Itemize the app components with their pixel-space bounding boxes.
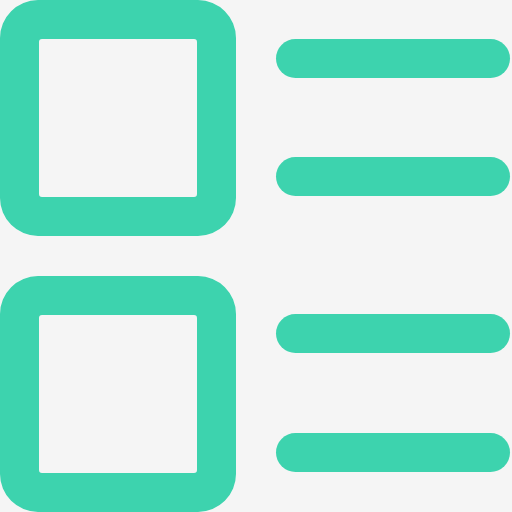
button[interactable]: List item 2 [0,276,512,512]
button[interactable]: List item 1 [0,0,512,276]
